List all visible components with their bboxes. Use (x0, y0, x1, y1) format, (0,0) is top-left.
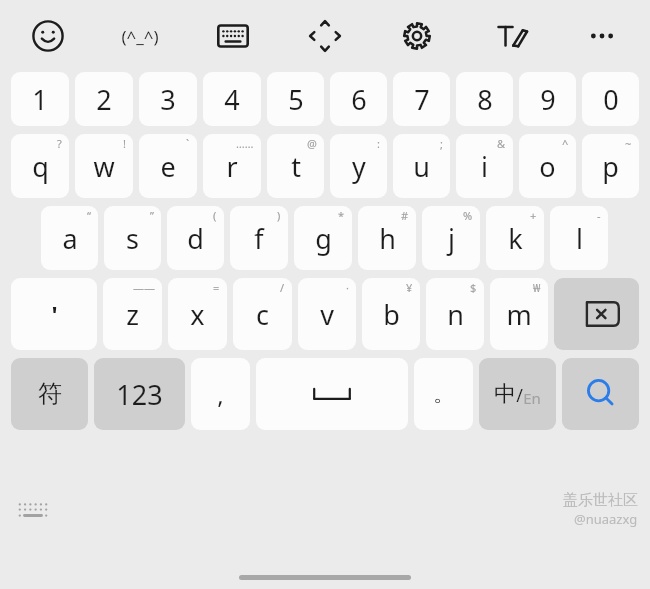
button[interactable]: l (550, 206, 608, 270)
staticText: t (291, 148, 301, 185)
staticText: 符 (38, 379, 62, 409)
staticText: $ (470, 280, 477, 295)
button[interactable]: b (362, 278, 420, 350)
staticText: * (338, 208, 345, 223)
staticText: ! (123, 136, 126, 151)
staticText: z (126, 296, 139, 333)
button[interactable]: o (519, 134, 576, 198)
staticText: , (217, 378, 224, 411)
button[interactable]: i (456, 134, 513, 198)
staticText: a (62, 220, 78, 257)
button[interactable]: Keyboard layout (189, 0, 277, 72)
staticText: · (346, 280, 349, 295)
button[interactable]: 符 (11, 358, 88, 430)
button[interactable]: u (393, 134, 450, 198)
staticText: 3 (160, 81, 176, 118)
staticText: h (379, 220, 396, 257)
staticText: i (481, 148, 488, 185)
button[interactable]: m (490, 278, 548, 350)
staticText: y (352, 148, 366, 185)
button[interactable]: 1 (11, 72, 69, 126)
button[interactable]: 4 (203, 72, 261, 126)
button[interactable]: c (233, 278, 292, 350)
button[interactable]: r (203, 134, 261, 198)
staticText: —— (133, 280, 155, 295)
button[interactable]: Backspace (554, 278, 639, 350)
button[interactable]: x (168, 278, 227, 350)
button[interactable]: 2 (75, 72, 133, 126)
staticText: u (413, 148, 430, 185)
button[interactable]: 9 (519, 72, 576, 126)
staticText: l (576, 220, 583, 257)
staticText: : (377, 136, 380, 151)
button[interactable]: a (41, 206, 98, 270)
button[interactable]: 6 (330, 72, 387, 126)
staticText: g (315, 220, 332, 257)
button[interactable]: t (267, 134, 324, 198)
button[interactable]: 123 (94, 358, 185, 430)
staticText: ` (186, 136, 190, 151)
staticText: c (256, 296, 269, 333)
button[interactable]: Handwriting (466, 0, 554, 72)
button[interactable]: Search (562, 358, 639, 430)
button[interactable]: Settings (373, 0, 461, 72)
button[interactable]: Kaomoji (96, 0, 184, 72)
staticText: d (187, 220, 204, 257)
staticText: @ (307, 136, 317, 151)
button[interactable]: Space (256, 358, 408, 430)
button[interactable]: 。 (414, 358, 473, 430)
staticText: “ (87, 208, 91, 223)
button[interactable]: j (422, 206, 480, 270)
button[interactable]: Emoji (4, 0, 92, 72)
button[interactable]: k (486, 206, 544, 270)
button[interactable]: q (11, 134, 69, 198)
staticText: 4 (224, 81, 240, 118)
staticText: 盖乐世社区 (563, 491, 638, 510)
staticText: v (320, 296, 334, 333)
button[interactable]: 中 (479, 358, 556, 430)
staticText: 8 (477, 81, 493, 118)
button[interactable]: f (230, 206, 288, 270)
staticText: + (530, 208, 537, 223)
staticText: ' (51, 299, 58, 330)
button[interactable]: ' (11, 278, 97, 350)
button[interactable]: e (139, 134, 197, 198)
button[interactable]: 8 (456, 72, 513, 126)
button[interactable]: More options (558, 0, 646, 72)
staticText: = (213, 280, 220, 295)
staticText: ~ (625, 136, 632, 151)
staticText: q (32, 148, 49, 185)
staticText: 2 (96, 81, 112, 118)
staticText: 1 (32, 81, 48, 118)
staticText: s (126, 220, 139, 257)
staticText: 0 (603, 81, 619, 118)
button[interactable]: d (167, 206, 224, 270)
staticText: En (523, 388, 541, 408)
staticText: ” (150, 208, 154, 223)
button[interactable]: 5 (267, 72, 324, 126)
staticText: ? (57, 136, 62, 151)
staticText: ¥ (406, 280, 413, 295)
staticText: m (506, 296, 532, 333)
button[interactable]: p (582, 134, 639, 198)
button[interactable]: Move cursor (281, 0, 369, 72)
staticText: f (254, 220, 264, 257)
button[interactable]: s (104, 206, 161, 270)
button[interactable]: y (330, 134, 387, 198)
staticText: ) (277, 208, 281, 223)
button[interactable]: h (358, 206, 416, 270)
staticText: o (539, 148, 556, 185)
button[interactable]: 7 (393, 72, 450, 126)
button[interactable]: n (426, 278, 484, 350)
button[interactable]: 3 (139, 72, 197, 126)
button[interactable]: g (294, 206, 352, 270)
button[interactable]: z (103, 278, 162, 350)
button[interactable]: w (75, 134, 133, 198)
staticText: k (508, 220, 523, 257)
staticText: b (383, 296, 400, 333)
button[interactable]: Hide keyboard (18, 500, 48, 520)
button[interactable]: , (191, 358, 250, 430)
staticText: ^ (562, 136, 569, 151)
button[interactable]: 0 (582, 72, 639, 126)
button[interactable]: v (298, 278, 356, 350)
